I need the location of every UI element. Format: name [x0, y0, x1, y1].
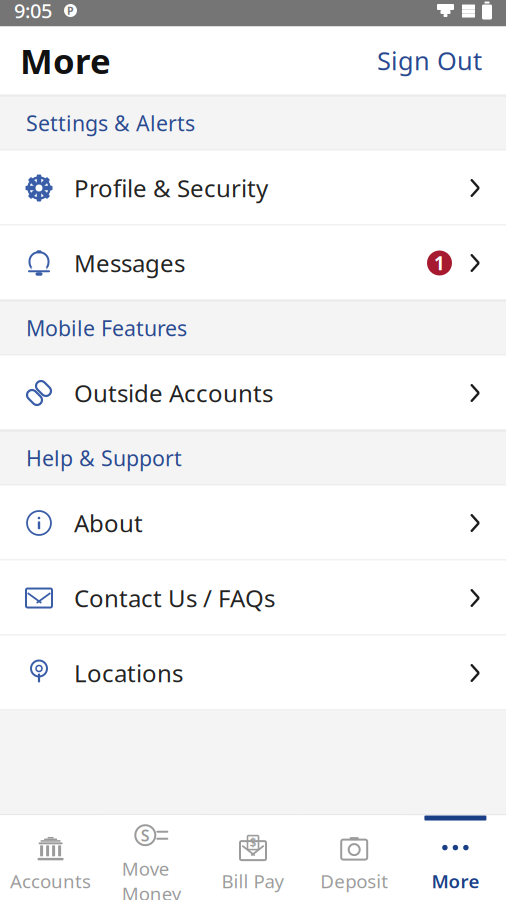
staticText: Sign Out — [377, 44, 482, 77]
staticText: P — [67, 3, 74, 18]
button[interactable]: About — [0, 485, 506, 560]
staticText: Move Money — [122, 856, 182, 900]
staticText: About — [74, 507, 143, 539]
staticText: More — [20, 37, 111, 83]
button[interactable]: Sign Out — [373, 36, 486, 85]
staticText: Settings & Alerts — [26, 109, 195, 137]
button[interactable]: Locations — [0, 635, 506, 710]
button[interactable]: More — [405, 815, 506, 900]
staticText: S — [141, 825, 150, 846]
button[interactable]: Outside Accounts — [0, 355, 506, 430]
staticText: Locations — [74, 657, 183, 689]
button[interactable]: Contact Us / FAQs — [0, 560, 506, 635]
staticText: Outside Accounts — [74, 377, 273, 409]
button[interactable]: $ — [202, 815, 304, 900]
staticText: 9:05 — [14, 0, 52, 24]
staticText: $ — [249, 835, 256, 850]
staticText: Bill Pay — [221, 869, 284, 893]
button[interactable]: Deposit — [304, 815, 405, 900]
button[interactable]: Accounts — [0, 815, 101, 900]
staticText: Deposit — [320, 869, 388, 893]
staticText: Contact Us / FAQs — [74, 582, 275, 614]
staticText: More — [431, 869, 479, 893]
button[interactable]: Messages — [0, 225, 506, 300]
button[interactable]: Profile & Security — [0, 150, 506, 225]
staticText: Messages — [74, 247, 185, 279]
staticText: Help & Support — [26, 444, 182, 472]
staticText: 1 — [434, 251, 445, 275]
staticText: Accounts — [10, 869, 91, 893]
button[interactable]: S — [101, 815, 202, 900]
staticText: Mobile Features — [26, 314, 187, 342]
staticText: Profile & Security — [74, 172, 268, 204]
